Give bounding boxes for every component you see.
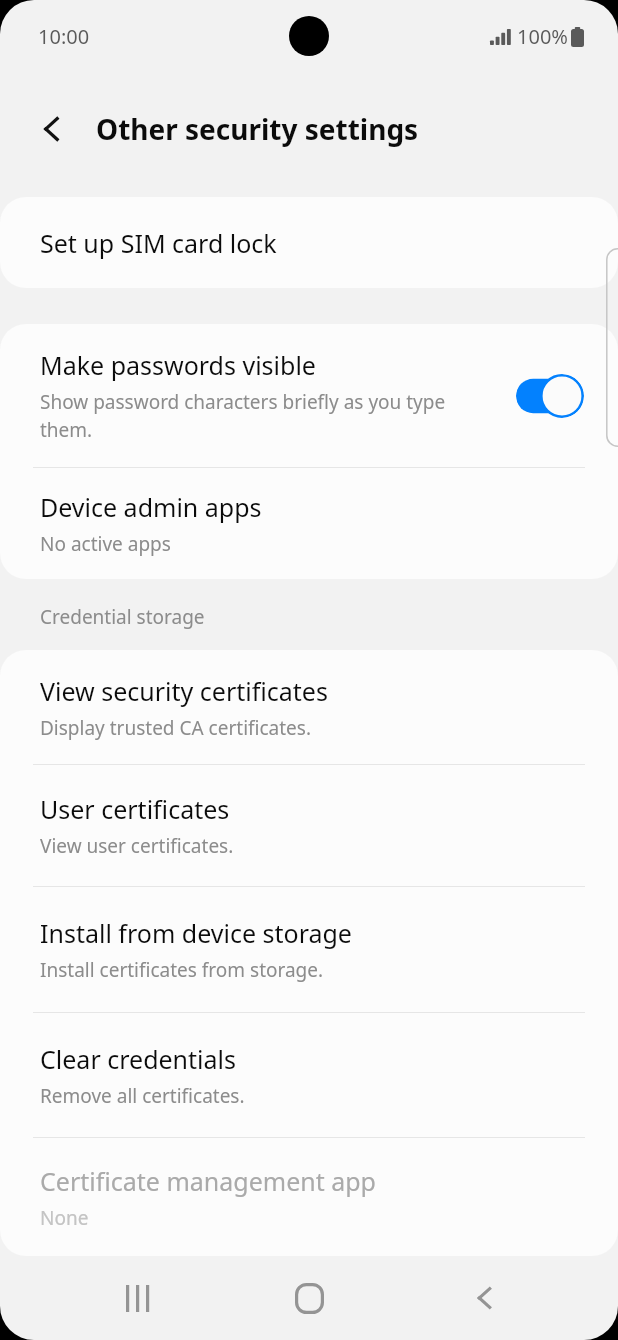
staticText: Credential storage [40,604,205,630]
button[interactable]: View security certificates [0,650,618,764]
staticText: User certificates [40,792,230,826]
staticText: View security certificates [40,674,328,708]
button[interactable]: Set up SIM card lock [0,197,618,288]
staticText: Install from device storage [40,916,352,950]
staticText: Certificate management app [40,1164,376,1198]
staticText: Set up SIM card lock [40,226,277,260]
staticText: Show password characters briefly as you … [40,389,488,443]
staticText: Remove all certificates. [40,1083,245,1109]
button[interactable]: Back [451,1264,519,1332]
staticText: 100% [517,23,568,50]
staticText: No active apps [40,531,171,557]
button[interactable]: Navigate up [24,101,80,157]
staticText: None [40,1205,89,1231]
button[interactable]: Clear credentials [0,1013,618,1137]
staticText: Make passwords visible [40,348,316,382]
staticText: Display trusted CA certificates. [40,715,312,741]
button[interactable]: Device admin apps [0,468,618,579]
staticText: 10:00 [38,23,90,50]
button[interactable]: Make passwords visible [516,374,584,418]
button[interactable]: Home [275,1264,343,1332]
staticText: View user certificates. [40,833,234,859]
button[interactable]: Recent apps [105,1264,173,1332]
button[interactable]: User certificates [0,765,618,886]
button[interactable]: Make passwords visible [0,324,618,467]
staticText: Clear credentials [40,1042,236,1076]
button[interactable]: Install from device storage [0,887,618,1012]
staticText: Other security settings [96,110,419,148]
staticText: Install certificates from storage. [40,957,324,983]
button: Certificate management app [0,1138,618,1256]
staticText: Device admin apps [40,490,262,524]
